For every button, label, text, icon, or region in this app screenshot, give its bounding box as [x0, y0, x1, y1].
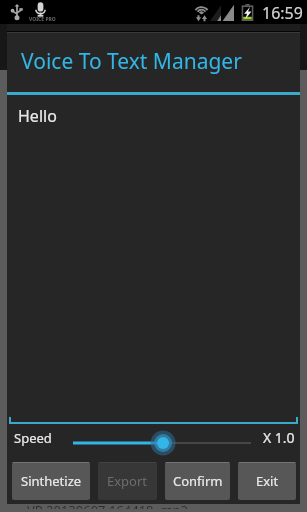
- staticText: VP 20130607 164418 .mp3: [27, 501, 188, 509]
- staticText: VOICE PRO: [29, 16, 56, 23]
- button[interactable]: Exit: [238, 462, 296, 500]
- staticText: Voice To Text Manager: [21, 47, 242, 76]
- staticText: Sinthetize: [21, 472, 82, 490]
- staticText: 16:59: [262, 2, 303, 24]
- button[interactable]: Sinthetize: [12, 462, 90, 500]
- button[interactable]: Export: [98, 462, 157, 500]
- staticText: Speed: [14, 429, 52, 447]
- staticText: Confirm: [173, 472, 223, 490]
- staticText: Export: [107, 472, 148, 490]
- button[interactable]: Confirm: [165, 462, 230, 500]
- staticText: Exit: [256, 472, 279, 490]
- staticText: Hello: [18, 105, 57, 127]
- button[interactable]: Speed slider: [73, 429, 251, 457]
- staticText: X 1.0: [263, 428, 295, 447]
